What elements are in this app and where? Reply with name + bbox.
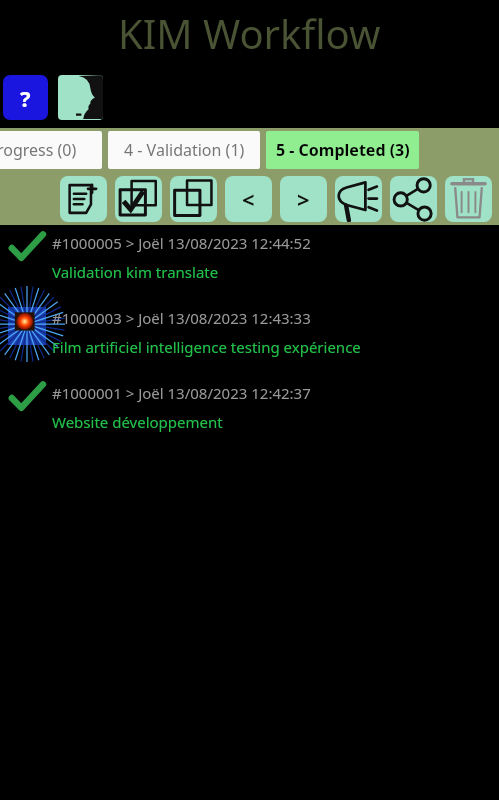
staticText: Validation kim translate	[52, 262, 219, 282]
button[interactable]: New document	[60, 176, 107, 222]
staticText: KIM Workflow	[118, 6, 381, 60]
button[interactable]: 4 - Validation (1)	[108, 131, 260, 169]
button[interactable]: #1000005 > Joël 13/08/2023 12:44:52	[0, 225, 499, 300]
button[interactable]: Profile	[58, 75, 103, 120]
staticText: 3 - In progress (0)	[0, 139, 77, 161]
button[interactable]: Copy	[170, 176, 217, 222]
button[interactable]: #1000003 > Joël 13/08/2023 12:43:33	[0, 300, 499, 375]
staticText: #1000005 > Joël 13/08/2023 12:44:52	[52, 233, 311, 253]
button[interactable]: Announce	[335, 176, 382, 222]
staticText: 4 - Validation (1)	[124, 139, 245, 161]
staticText: Website développement	[52, 412, 223, 432]
staticText: #1000003 > Joël 13/08/2023 12:43:33	[52, 308, 311, 328]
button[interactable]: Help	[3, 75, 48, 120]
button[interactable]: Delete	[445, 176, 492, 222]
button[interactable]: Next	[280, 176, 327, 222]
button[interactable]: 3 - In progress (0)	[0, 131, 102, 169]
button[interactable]: Previous	[225, 176, 272, 222]
staticText: <	[242, 184, 255, 214]
button[interactable]: Share	[390, 176, 437, 222]
staticText: 5 - Completed (3)	[276, 139, 410, 161]
staticText: #1000001 > Joël 13/08/2023 12:42:37	[52, 383, 311, 403]
button[interactable]: 5 - Completed (3)	[266, 131, 419, 169]
staticText: Film artificiel intelligence testing exp…	[52, 337, 361, 357]
button[interactable]: #1000001 > Joël 13/08/2023 12:42:37	[0, 375, 499, 450]
button[interactable]: Select all	[115, 176, 162, 222]
staticText: >	[297, 184, 310, 214]
staticText: ?	[20, 83, 31, 113]
